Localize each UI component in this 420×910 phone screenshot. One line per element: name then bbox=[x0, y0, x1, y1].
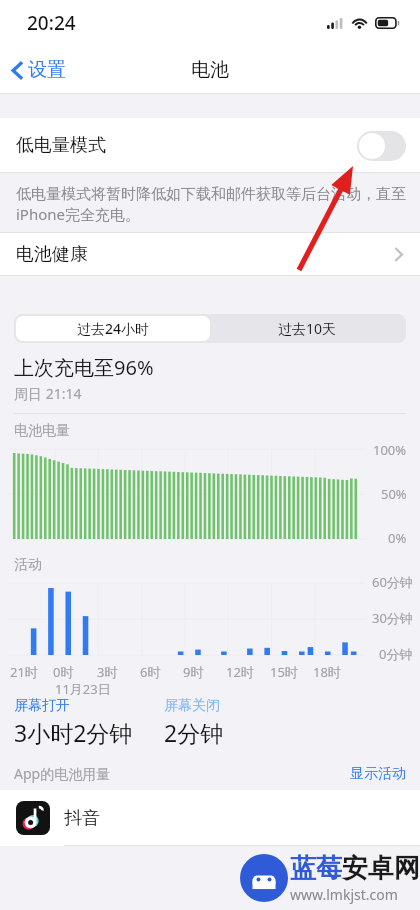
staticText: 上次充电至96% bbox=[14, 354, 154, 381]
button[interactable]: 过去24小时 bbox=[16, 316, 210, 341]
staticText: 50% bbox=[381, 485, 407, 503]
staticText: 过去10天 bbox=[278, 319, 337, 338]
staticText: 60分钟 bbox=[372, 573, 413, 591]
staticText: 0% bbox=[388, 529, 407, 547]
staticText: 100% bbox=[373, 441, 407, 459]
staticText: 6时 bbox=[140, 663, 161, 681]
staticText: 12时 bbox=[226, 663, 254, 681]
staticText: 蓝莓 bbox=[290, 852, 342, 885]
staticText: 30分钟 bbox=[372, 609, 413, 627]
staticText: 显示活动 bbox=[350, 765, 406, 783]
staticText: 屏幕打开 bbox=[14, 697, 70, 715]
button[interactable]: 低电量模式 bbox=[0, 118, 420, 173]
staticText: 2分钟 bbox=[164, 717, 224, 748]
staticText: 周日 21:14 bbox=[14, 384, 82, 403]
button[interactable]: 抖音 bbox=[0, 790, 420, 846]
button[interactable]: 过去10天 bbox=[210, 316, 404, 341]
staticText: 0时 bbox=[53, 663, 74, 681]
staticText: 20:24 bbox=[27, 10, 76, 36]
button[interactable]: 电池健康 bbox=[0, 232, 420, 276]
staticText: 过去24小时 bbox=[77, 319, 150, 338]
staticText: 3时 bbox=[97, 663, 118, 681]
staticText: 低电量模式将暂时降低如下载和邮件获取等后台活动，直至 iPhone完全充电。 bbox=[16, 183, 406, 225]
button[interactable]: 设置 bbox=[0, 50, 78, 90]
staticText: 15时 bbox=[270, 663, 298, 681]
staticText: 21时 bbox=[10, 663, 38, 681]
staticText: App的电池用量 bbox=[14, 764, 111, 783]
staticText: 活动 bbox=[14, 556, 42, 574]
staticText: www.lmkjst.com bbox=[290, 885, 398, 904]
staticText: 11月23日 bbox=[55, 680, 111, 698]
staticText: 屏幕关闭 bbox=[164, 697, 220, 715]
staticText: 设置 bbox=[28, 58, 66, 82]
staticText: 电池电量 bbox=[14, 422, 70, 440]
staticText: 电池健康 bbox=[16, 243, 88, 266]
staticText: 低电量模式 bbox=[16, 134, 106, 157]
button[interactable]: 低电量模式开关 bbox=[357, 131, 406, 161]
staticText: 抖音 bbox=[64, 807, 100, 830]
staticText: 3小时2分钟 bbox=[14, 717, 133, 748]
staticText: 0分钟 bbox=[379, 645, 413, 663]
staticText: 18时 bbox=[313, 663, 341, 681]
staticText: 9时 bbox=[183, 663, 204, 681]
button[interactable]: 显示活动 bbox=[350, 765, 406, 783]
staticText: 安卓网 bbox=[342, 852, 420, 885]
staticText: 电池 bbox=[191, 58, 229, 82]
